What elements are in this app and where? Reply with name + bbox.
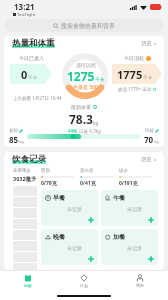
- staticText: 44%: [68, 128, 77, 134]
- button[interactable]: 加餐: [101, 229, 158, 265]
- staticText: 还要喝水: [13, 168, 31, 174]
- staticText: 未记录: [67, 206, 82, 212]
- staticText: 搜索食物热量和营养: [61, 22, 115, 30]
- staticText: 历史: [141, 40, 152, 47]
- staticText: 1775: [117, 67, 143, 82]
- button[interactable]: 搜索食物热量和营养: [5, 19, 163, 32]
- staticText: kg: [154, 139, 159, 144]
- staticText: 0/41克: [80, 180, 96, 187]
- staticText: 今日已摄入: [19, 55, 44, 61]
- staticText: 今日消耗: [124, 55, 144, 61]
- staticText: 热量和体重: [12, 38, 55, 49]
- staticText: 78.3: [69, 111, 93, 127]
- staticText: 记录: [24, 283, 32, 288]
- staticText: 计划: [80, 283, 88, 288]
- staticText: 初始: [9, 128, 18, 134]
- staticText: 最新体重: [71, 104, 91, 110]
- staticText: 0/191克: [119, 180, 138, 187]
- staticText: 0/79克: [41, 180, 57, 187]
- button[interactable]: 晚餐: [41, 229, 98, 265]
- staticText: 70: [144, 134, 154, 145]
- staticText: 碳水: [119, 168, 128, 174]
- button[interactable]: Add 早餐: [87, 216, 95, 224]
- staticText: 上次称重 1月27日 16:44: [13, 95, 62, 101]
- staticText: 饮食记录: [12, 154, 46, 165]
- staticText: 0: [21, 67, 28, 82]
- staticText: 热量差 500: [73, 84, 98, 91]
- staticText: 还可以吃: [76, 62, 96, 68]
- staticText: 13:21: [14, 1, 35, 12]
- staticText: kg: [19, 139, 24, 144]
- button[interactable]: 我的: [112, 273, 168, 289]
- staticText: 未记录: [127, 206, 142, 212]
- button[interactable]: 计划: [56, 273, 112, 289]
- staticText: 脂肪: [41, 168, 50, 174]
- button[interactable]: 历史: [141, 156, 157, 163]
- button[interactable]: Add 午餐: [147, 216, 155, 224]
- staticText: 蛋白质: [80, 168, 94, 174]
- button[interactable]: Add 晚餐: [87, 255, 95, 263]
- staticText: 午餐: [113, 194, 125, 202]
- staticText: 加餐: [113, 233, 125, 241]
- button[interactable]: 早餐: [41, 190, 98, 226]
- staticText: 未记录: [67, 245, 82, 251]
- button[interactable]: Add 加餐: [147, 255, 155, 263]
- staticText: 千卡: [143, 75, 152, 81]
- staticText: 3032毫升: [13, 175, 37, 183]
- staticText: 目标: [145, 128, 154, 134]
- button[interactable]: 历史: [141, 40, 157, 47]
- staticText: 千卡: [28, 75, 37, 81]
- staticText: TestFlight: [17, 12, 36, 17]
- staticText: 静息 1775+ 运动: [118, 86, 152, 92]
- staticText: kg: [93, 120, 99, 126]
- button[interactable]: 午餐: [101, 190, 158, 226]
- staticText: 早餐: [53, 194, 65, 202]
- staticText: 晚餐: [53, 233, 65, 241]
- staticText: 未记录: [127, 245, 142, 251]
- staticText: 已减 6.7kg: [79, 128, 101, 134]
- staticText: 85: [9, 134, 19, 145]
- button[interactable]: 记录: [0, 273, 56, 289]
- staticText: 历史: [141, 156, 152, 163]
- staticText: 1275: [67, 68, 95, 84]
- staticText: 千卡: [95, 77, 104, 83]
- staticText: 我的: [136, 283, 144, 288]
